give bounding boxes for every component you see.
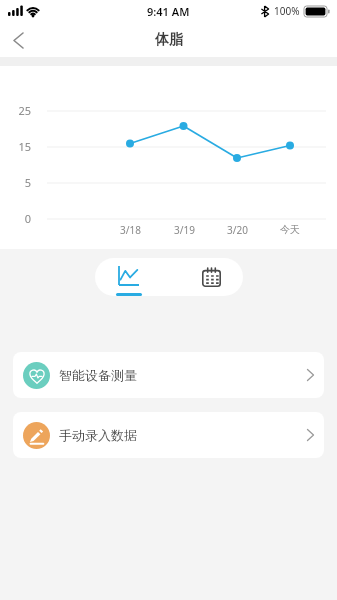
button[interactable] <box>95 258 169 296</box>
staticText: 15 <box>18 139 31 154</box>
staticText: 手动录入数据 <box>59 427 137 443</box>
staticText: 3/19 <box>174 223 195 237</box>
staticText: 0 <box>24 211 31 226</box>
staticText: 体脂 <box>155 31 183 49</box>
button[interactable] <box>4 26 32 54</box>
button[interactable] <box>169 258 243 296</box>
staticText: 25 <box>18 103 31 118</box>
staticText: 智能设备测量 <box>59 367 137 383</box>
staticText: 5 <box>24 175 31 190</box>
button[interactable]: 智能设备测量 <box>13 352 324 398</box>
staticText: 今天 <box>280 223 300 236</box>
button[interactable]: 手动录入数据 <box>13 412 324 458</box>
staticText: 3/20 <box>227 223 248 237</box>
staticText: 100% <box>274 4 300 18</box>
staticText: 3/18 <box>120 223 141 237</box>
staticText: 9:41 AM <box>147 4 190 19</box>
